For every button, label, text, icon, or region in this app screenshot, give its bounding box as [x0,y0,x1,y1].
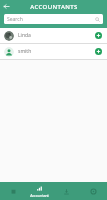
button[interactable]: Back [0,0,13,13]
staticText: ACCOUNTANTS [30,3,78,11]
button[interactable]: Search [4,14,103,24]
staticText: smith [18,48,94,55]
button[interactable]: Add smith [94,47,103,56]
button[interactable]: Settings [80,182,107,200]
button[interactable]: smith [0,44,107,59]
button[interactable]: Home [0,182,26,200]
staticText: Search [7,16,23,23]
button[interactable]: Add Linda [94,31,103,40]
button[interactable]: Accountant [26,182,53,200]
staticText: Linda [18,32,94,39]
button[interactable]: Linda [0,28,107,43]
staticText: Accountant [30,193,49,198]
